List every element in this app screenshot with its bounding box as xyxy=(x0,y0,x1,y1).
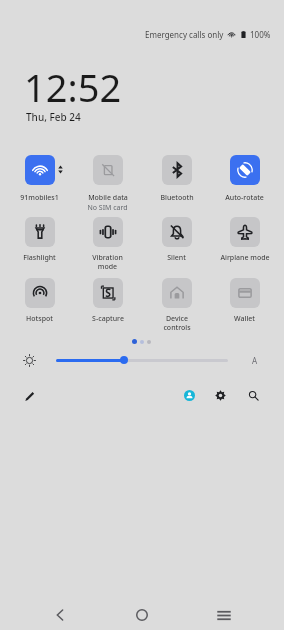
staticText: S-capture xyxy=(92,314,124,324)
button[interactable]: Edit xyxy=(24,391,35,402)
button[interactable]: Auto-rotate xyxy=(211,155,278,203)
button[interactable]: Bluetooth xyxy=(143,155,210,203)
staticText: 100% xyxy=(250,29,271,40)
staticText: Vibration mode xyxy=(92,253,123,271)
staticText: Auto-rotate xyxy=(225,193,264,203)
button[interactable]: Device controls xyxy=(143,278,210,332)
button[interactable]: Hotspot xyxy=(6,278,73,324)
staticText: Bluetooth xyxy=(160,193,194,203)
staticText: Flashlight xyxy=(23,253,56,263)
button[interactable]: Back xyxy=(46,600,74,628)
staticText: Thu, Feb 24 xyxy=(26,110,81,124)
staticText: Airplane mode xyxy=(220,253,270,263)
staticText: Mobile data xyxy=(88,193,128,203)
button[interactable] xyxy=(56,359,228,362)
button[interactable]: User xyxy=(184,390,195,401)
button[interactable]: S-capture xyxy=(74,278,141,324)
button[interactable]: Auto brightness xyxy=(249,354,261,366)
button[interactable]: Recents xyxy=(210,600,238,628)
button[interactable]: Flashlight xyxy=(6,217,73,263)
staticText: Silent xyxy=(167,253,186,263)
button[interactable]: Mobile data xyxy=(74,155,141,213)
staticText: Hotspot xyxy=(26,314,53,324)
staticText: 91mobiles1 xyxy=(20,193,59,203)
button[interactable]: Wallet xyxy=(211,278,278,324)
staticText: No SIM card xyxy=(87,203,128,213)
button[interactable]: Home xyxy=(128,600,156,628)
button[interactable]: Search xyxy=(248,390,259,401)
button[interactable]: Settings xyxy=(215,390,226,401)
staticText: Device controls xyxy=(163,314,191,332)
button[interactable]: Silent xyxy=(143,217,210,263)
button[interactable]: Vibration mode xyxy=(74,217,141,271)
button[interactable]: Airplane mode xyxy=(211,217,278,263)
staticText: 12:52 xyxy=(24,61,122,113)
staticText: A xyxy=(252,355,258,366)
staticText: Wallet xyxy=(234,314,255,324)
staticText: Emergency calls only xyxy=(145,29,224,40)
button[interactable]: 91mobiles1 xyxy=(6,155,73,203)
